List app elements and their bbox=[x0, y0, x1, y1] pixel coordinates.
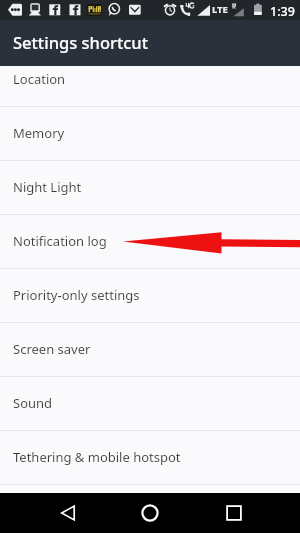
staticText: Memory bbox=[13, 124, 65, 142]
staticText: Settings shortcut bbox=[13, 31, 149, 53]
staticText: LTE bbox=[212, 3, 228, 16]
button[interactable]: Notification log bbox=[0, 215, 300, 268]
button[interactable]: Sound bbox=[0, 377, 300, 430]
staticText: Location bbox=[13, 70, 66, 88]
button[interactable]: Screen saver bbox=[0, 323, 300, 376]
staticText: Night Light bbox=[13, 178, 82, 196]
button[interactable]: Back bbox=[47, 493, 88, 533]
staticText: Priority-only settings bbox=[13, 286, 140, 304]
button[interactable]: Memory bbox=[0, 107, 300, 160]
staticText: Notification log bbox=[13, 232, 107, 250]
staticText: Screen saver bbox=[13, 340, 91, 358]
button[interactable]: Night Light bbox=[0, 161, 300, 214]
staticText: Sound bbox=[13, 394, 53, 412]
button[interactable]: Home bbox=[130, 493, 170, 533]
staticText: Tethering & mobile hotspot bbox=[13, 448, 181, 466]
button[interactable]: Location bbox=[0, 66, 300, 106]
button[interactable]: Tethering & mobile hotspot bbox=[0, 431, 300, 484]
button[interactable]: Recent apps bbox=[214, 493, 254, 533]
staticText: 1:39 bbox=[270, 3, 295, 20]
button[interactable]: Priority-only settings bbox=[0, 269, 300, 322]
